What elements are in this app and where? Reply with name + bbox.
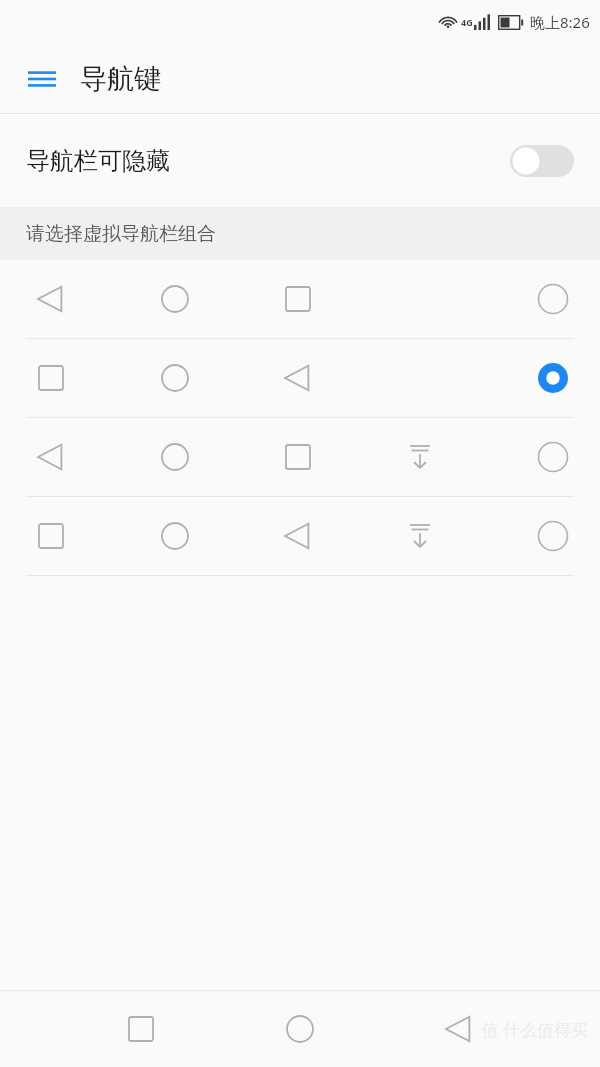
button[interactable]	[0, 497, 600, 575]
button[interactable]	[0, 260, 600, 338]
staticText: 值 什么值得买	[481, 1018, 588, 1041]
other: Toggle navigation bar hide	[510, 145, 574, 177]
button[interactable]: 导航栏可隐藏	[0, 114, 600, 207]
button[interactable]: Back	[427, 997, 491, 1061]
button[interactable]: Home	[268, 997, 332, 1061]
button[interactable]	[0, 339, 600, 417]
staticText: 导航栏可隐藏	[26, 146, 510, 176]
staticText: 导航键	[80, 62, 161, 96]
button[interactable]: Menu	[18, 55, 66, 103]
staticText: 请选择虚拟导航栏组合	[26, 222, 216, 246]
staticText: 晚上8:26	[530, 12, 590, 32]
button[interactable]: Recents	[109, 997, 173, 1061]
staticText: 4G	[461, 16, 473, 28]
button[interactable]	[0, 418, 600, 496]
